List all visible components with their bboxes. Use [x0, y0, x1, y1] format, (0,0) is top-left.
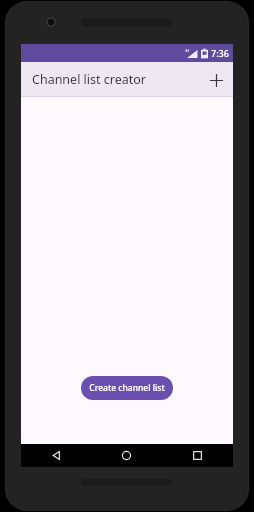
- button[interactable]: Add channel list: [199, 63, 233, 97]
- staticText: Channel list creator: [32, 71, 147, 88]
- button[interactable]: Back: [21, 444, 91, 467]
- button[interactable]: Recent apps: [162, 444, 233, 467]
- button[interactable]: Create channel list: [81, 376, 173, 400]
- staticText: Create channel list: [89, 382, 165, 394]
- staticText: 7:36: [211, 47, 229, 59]
- button[interactable]: Home: [91, 444, 162, 467]
